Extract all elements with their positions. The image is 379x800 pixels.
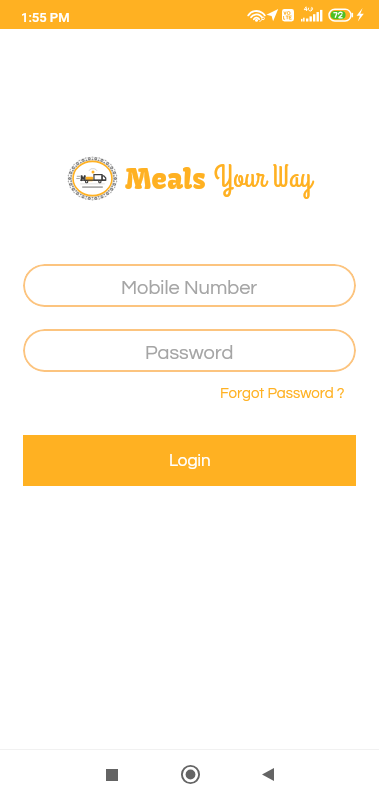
staticText: Mobile Number [121,278,258,299]
button[interactable]: Mobile Number [23,264,356,307]
staticText: Password [145,343,234,364]
button[interactable]: Home [170,754,211,795]
button[interactable]: Recent apps [91,754,132,795]
staticText: Forgot Password ? [220,386,345,401]
button[interactable]: Back [247,754,288,795]
button[interactable]: Password [23,329,356,372]
staticText: Your Way [214,157,312,199]
staticText: 1:55 PM [21,10,70,25]
button[interactable]: Login [23,435,356,486]
staticText: Login [169,452,211,470]
button[interactable]: Forgot Password ? [220,386,379,401]
staticText: Meals [125,161,206,196]
